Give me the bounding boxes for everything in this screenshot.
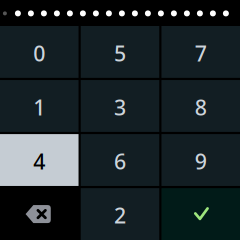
button[interactable]: 6 — [81, 134, 159, 186]
staticText: 7 — [195, 39, 207, 67]
button[interactable]: 1 — [0, 80, 78, 132]
button[interactable]: 8 — [161, 80, 240, 132]
staticText: 9 — [195, 147, 207, 175]
staticText: 4 — [33, 147, 45, 175]
staticText: 1 — [33, 93, 45, 121]
button[interactable]: 9 — [161, 134, 240, 186]
staticText: 0 — [33, 39, 45, 67]
staticText: 3 — [114, 93, 126, 121]
button[interactable]: Delete — [0, 188, 78, 240]
staticText: 2 — [114, 201, 126, 229]
button[interactable]: 4 — [0, 134, 78, 186]
button[interactable]: 2 — [81, 188, 159, 240]
button[interactable]: 7 — [161, 26, 240, 78]
staticText: 8 — [195, 93, 207, 121]
button[interactable]: 3 — [81, 80, 159, 132]
button[interactable]: 0 — [0, 26, 78, 78]
button[interactable]: 5 — [81, 26, 159, 78]
staticText: 6 — [114, 147, 126, 175]
button[interactable]: Confirm — [161, 188, 240, 240]
staticText: 5 — [114, 39, 126, 67]
